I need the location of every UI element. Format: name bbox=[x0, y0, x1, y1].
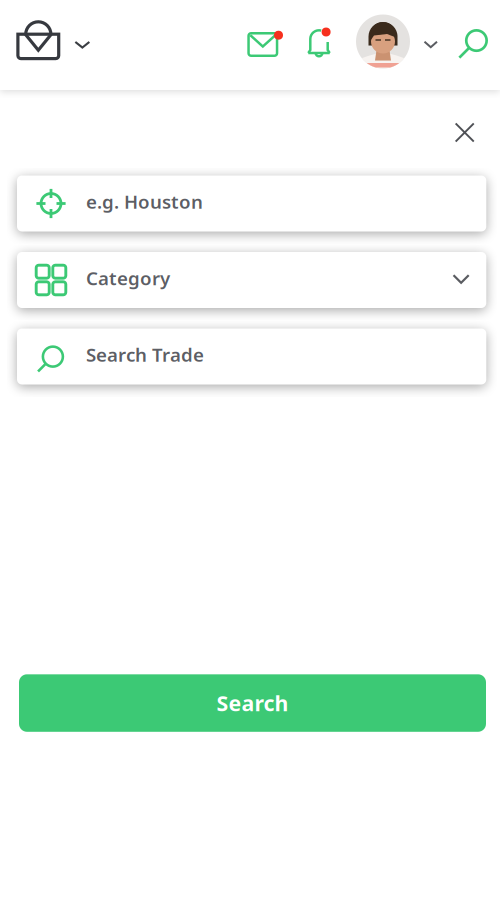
button[interactable]: Home menu bbox=[16, 15, 94, 65]
button[interactable]: Search Trade bbox=[17, 328, 486, 384]
staticText: Search bbox=[216, 689, 288, 717]
button[interactable]: Messages bbox=[247, 23, 287, 65]
staticText: e.g. Houston bbox=[86, 189, 203, 214]
button[interactable]: Category bbox=[17, 252, 486, 308]
button[interactable]: Search bbox=[19, 674, 486, 732]
button[interactable]: Close bbox=[443, 110, 487, 154]
button[interactable]: Search bbox=[452, 25, 492, 65]
staticText: Search Trade bbox=[86, 342, 204, 367]
staticText: Category bbox=[86, 266, 170, 290]
button[interactable]: Account bbox=[356, 14, 440, 68]
button[interactable]: e.g. Houston bbox=[17, 175, 486, 231]
button[interactable]: Notifications bbox=[307, 27, 339, 67]
